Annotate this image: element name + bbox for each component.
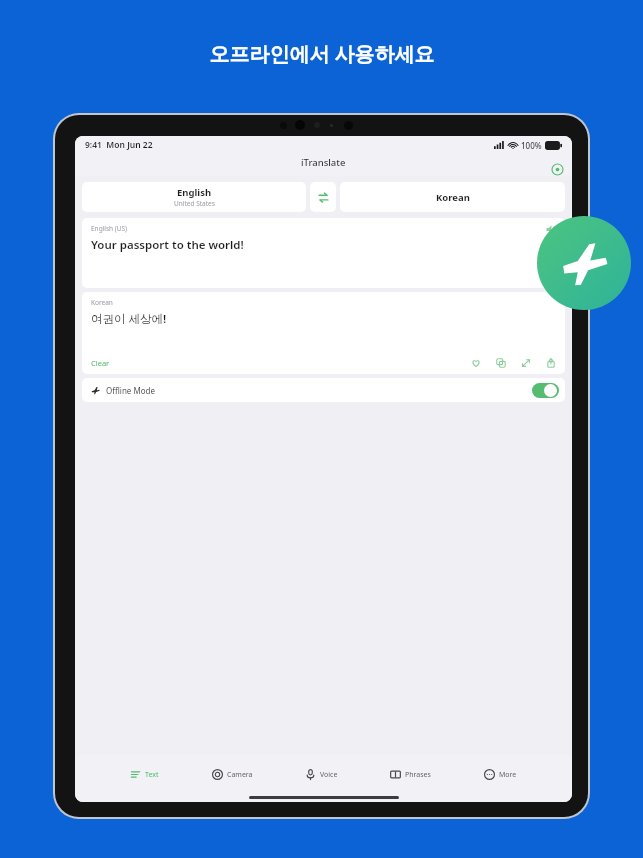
staticText: iTranslate: [301, 156, 346, 169]
staticText: Your passport to the world!: [91, 237, 244, 253]
button[interactable]: Voice: [302, 765, 341, 784]
staticText: Korean: [436, 191, 470, 204]
button[interactable]: English: [82, 182, 306, 212]
button[interactable]: Phrases: [387, 765, 434, 784]
staticText: 9:41 Mon Jun 22: [85, 139, 153, 151]
staticText: English: [177, 186, 212, 199]
staticText: Clear: [91, 358, 110, 368]
button[interactable]: Share: [543, 355, 558, 370]
button[interactable]: Listen: [543, 221, 559, 237]
button[interactable]: Camera: [209, 765, 256, 784]
staticText: Voice: [320, 770, 338, 780]
button[interactable]: Korean: [340, 182, 565, 212]
other: Offline mode airplane: [537, 216, 631, 310]
staticText: United States: [174, 199, 215, 208]
button[interactable]: Copy: [493, 355, 508, 370]
button[interactable]: Clear: [91, 358, 110, 368]
button[interactable]: Offline Mode toggle: [532, 383, 559, 398]
staticText: Phrases: [405, 770, 431, 780]
staticText: 오프라인에서 사용하세요: [209, 40, 435, 67]
staticText: 100%: [521, 140, 542, 151]
staticText: Offline Mode: [106, 385, 155, 396]
button[interactable]: Offline Mode: [82, 378, 565, 402]
button[interactable]: Korean: [82, 292, 565, 374]
button[interactable]: Settings: [550, 162, 564, 176]
staticText: Text: [145, 770, 159, 780]
staticText: Korean: [91, 298, 113, 307]
button[interactable]: Text: [127, 765, 162, 784]
staticText: 여권이 세상에!: [91, 311, 167, 327]
staticText: More: [499, 770, 517, 780]
button[interactable]: Expand: [518, 355, 533, 370]
staticText: English (US): [91, 224, 128, 233]
button[interactable]: Favorite: [468, 355, 483, 370]
button[interactable]: Swap languages: [310, 182, 336, 212]
staticText: Camera: [227, 770, 253, 780]
button[interactable]: More: [481, 765, 520, 784]
button[interactable]: English (US): [82, 218, 565, 288]
